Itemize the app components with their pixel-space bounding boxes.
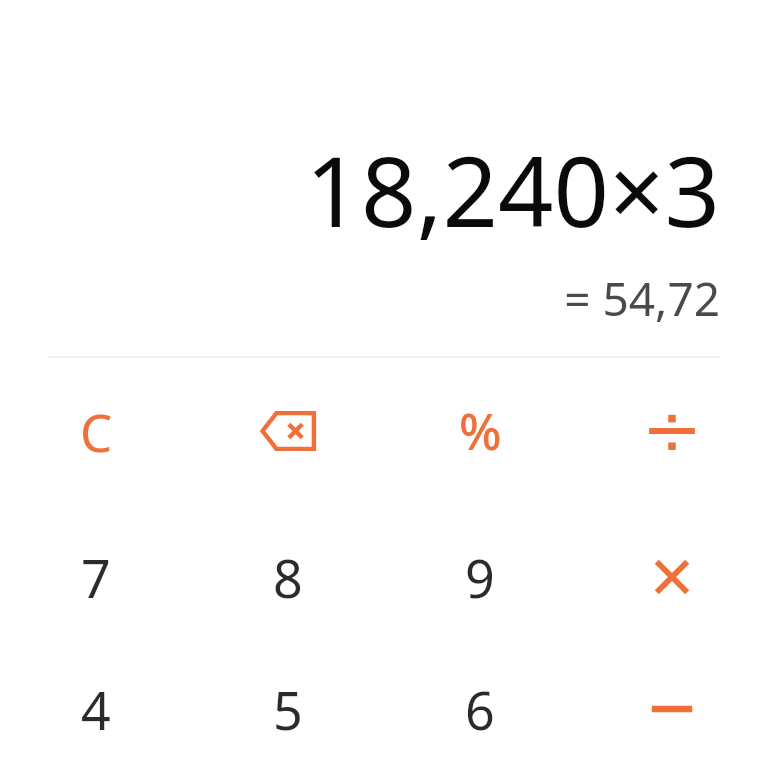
staticText: 9 (465, 542, 495, 613)
staticText: = 54,72 (40, 267, 720, 330)
button[interactable]: Minus (576, 650, 768, 768)
button[interactable]: Clear (0, 358, 192, 504)
button[interactable]: Divide (576, 358, 768, 504)
button[interactable]: 4 (0, 650, 192, 768)
staticText: 5 (273, 674, 303, 745)
button[interactable]: 8 (192, 504, 384, 650)
staticText: 8 (273, 542, 303, 613)
button[interactable]: 5 (192, 650, 384, 768)
button[interactable]: 7 (0, 504, 192, 650)
button[interactable]: Multiply (576, 504, 768, 650)
button[interactable]: Percent (384, 358, 576, 504)
staticText: % (459, 397, 502, 465)
button[interactable]: 6 (384, 650, 576, 768)
button[interactable]: Backspace (192, 358, 384, 504)
staticText: 18,240×3 (40, 123, 720, 255)
staticText: 7 (81, 542, 111, 613)
staticText: 6 (465, 674, 495, 745)
staticText: 4 (81, 674, 111, 745)
staticText: C (80, 397, 113, 466)
button[interactable]: 9 (384, 504, 576, 650)
